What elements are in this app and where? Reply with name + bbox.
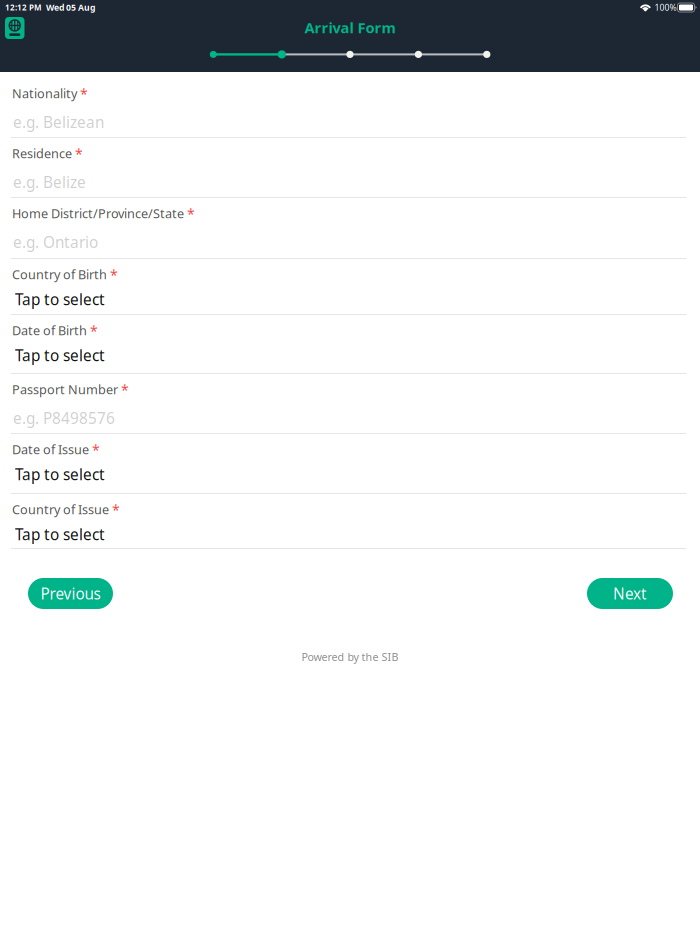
button[interactable]: Previous xyxy=(28,578,113,609)
button[interactable]: Passport xyxy=(0,12,29,44)
staticText: Tap to select xyxy=(15,345,105,366)
staticText: * xyxy=(80,84,88,103)
staticText: Residence xyxy=(12,145,72,162)
staticText: e.g. Ontario xyxy=(13,231,98,252)
button[interactable]: Date of Birth xyxy=(0,314,700,374)
staticText: Next xyxy=(613,583,647,604)
staticText: e.g. P8498576 xyxy=(13,407,115,428)
staticText: Tap to select xyxy=(15,289,105,310)
staticText: Passport Number xyxy=(12,381,118,398)
staticText: * xyxy=(110,265,118,284)
staticText: 100% xyxy=(654,1,676,13)
staticText: Tap to select xyxy=(15,524,105,545)
staticText: Country of Birth xyxy=(12,266,107,283)
staticText: e.g. Belizean xyxy=(13,111,104,132)
staticText: * xyxy=(112,500,120,519)
staticText: * xyxy=(90,321,98,340)
staticText: * xyxy=(187,204,195,223)
button[interactable]: Country of Issue xyxy=(0,493,700,549)
staticText: Home District/Province/State xyxy=(12,205,184,222)
button[interactable]: Home District/Province/State xyxy=(0,197,700,259)
staticText: Date of Issue xyxy=(12,441,89,458)
staticText: Arrival Form xyxy=(304,17,395,37)
button[interactable]: Next xyxy=(587,578,673,609)
staticText: e.g. Belize xyxy=(13,171,86,192)
staticText: Nationality xyxy=(12,85,77,102)
button[interactable]: Nationality xyxy=(0,77,700,138)
staticText: 12:12 PM xyxy=(5,2,42,13)
staticText: Tap to select xyxy=(15,464,105,485)
staticText: Previous xyxy=(40,583,100,604)
button[interactable]: Date of Issue xyxy=(0,433,700,494)
staticText: Powered by the SIB xyxy=(301,649,398,664)
staticText: Wed 05 Aug xyxy=(46,1,95,13)
staticText: * xyxy=(92,440,100,459)
staticText: Country of Issue xyxy=(12,501,109,518)
button[interactable]: Passport Number xyxy=(0,373,700,434)
button[interactable]: Country of Birth xyxy=(0,258,700,315)
staticText: Date of Birth xyxy=(12,322,87,339)
staticText: * xyxy=(75,144,83,163)
staticText: * xyxy=(121,380,129,399)
button[interactable]: Residence xyxy=(0,137,700,198)
